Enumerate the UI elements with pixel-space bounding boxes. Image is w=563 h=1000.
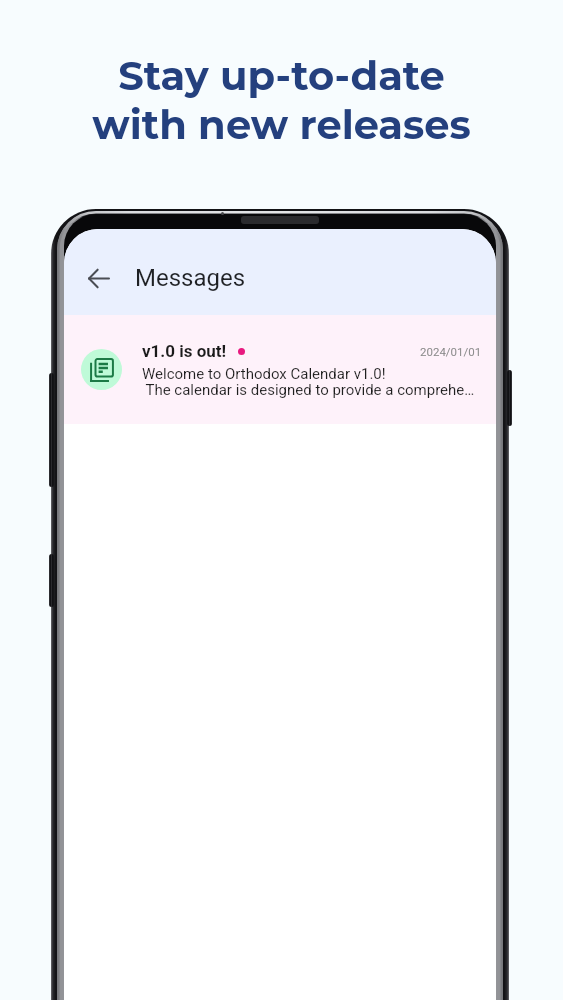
staticText: v1.0 is out! — [142, 341, 227, 361]
button[interactable]: Back — [78, 258, 118, 298]
staticText: with new releases — [92, 100, 471, 149]
button[interactable]: v1.0 is out! — [64, 315, 496, 424]
staticText: 2024/01/01 — [420, 345, 482, 358]
staticText: Messages — [135, 264, 246, 292]
staticText: Stay up-to-date — [118, 51, 445, 100]
staticText: Welcome to Orthodox Calendar v1.0! The c… — [142, 365, 475, 399]
